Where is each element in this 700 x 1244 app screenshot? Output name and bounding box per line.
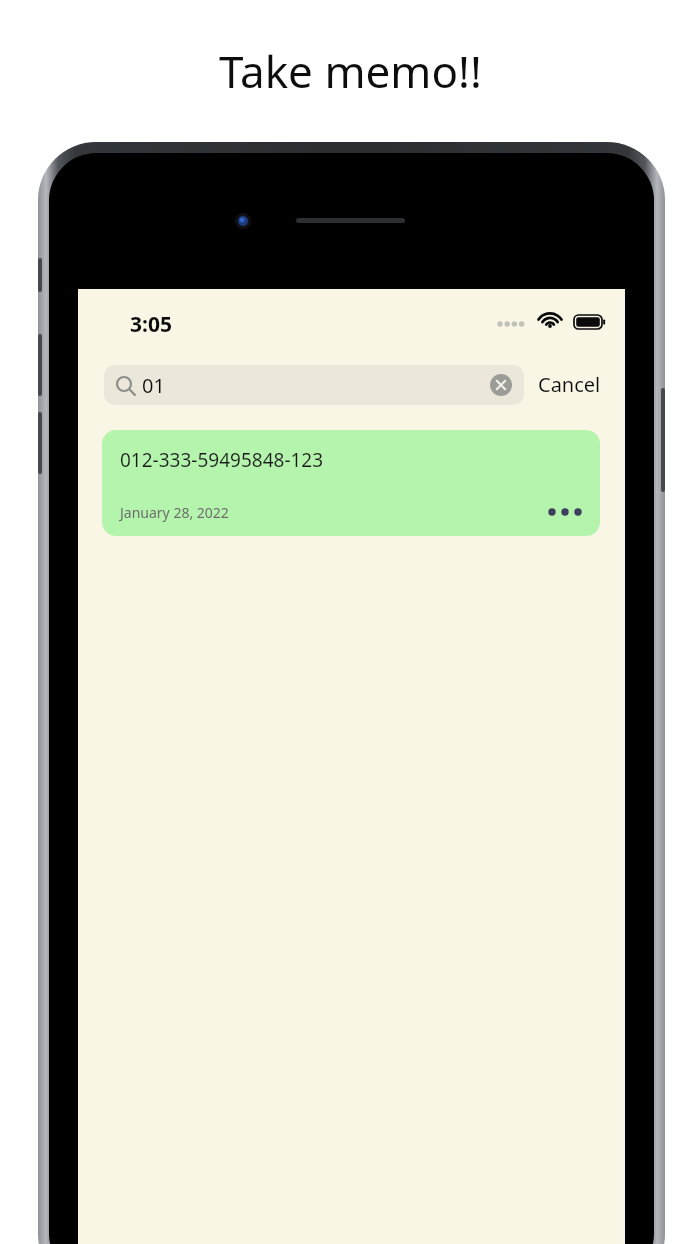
button[interactable]: Clear search [489, 373, 513, 397]
button[interactable]: Cancel [524, 363, 601, 406]
staticText: 012-333-59495848-123 [120, 447, 324, 473]
staticText: Cancel [538, 371, 601, 398]
staticText: Take memo!! [219, 41, 482, 101]
staticText: 01 [142, 372, 165, 399]
staticText: 3:05 [130, 310, 172, 339]
staticText: January 28, 2022 [120, 503, 229, 522]
button[interactable]: More options [546, 502, 584, 522]
button[interactable]: 012-333-59495848-123 [102, 430, 600, 536]
button[interactable]: 01 [104, 365, 524, 405]
